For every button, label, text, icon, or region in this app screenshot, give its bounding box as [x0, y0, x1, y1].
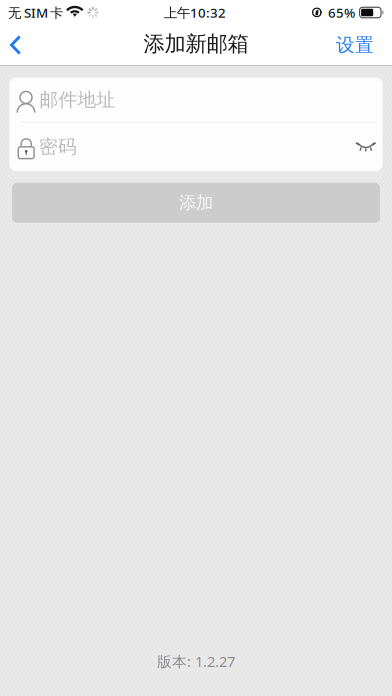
button[interactable]: 设置 [318, 23, 392, 66]
staticText: 65% [328, 4, 355, 21]
staticText: 无 SIM 卡 [8, 4, 63, 21]
staticText: 添加 [179, 192, 213, 213]
button[interactable]: 添加 [12, 183, 380, 223]
button[interactable]: 返回 [0, 25, 39, 65]
staticText: 密码 [39, 135, 77, 158]
staticText: 版本: 1.2.27 [157, 651, 235, 671]
staticText: 上午10:32 [164, 4, 226, 21]
button[interactable]: 显示密码 [345, 129, 382, 165]
staticText: 设置 [336, 33, 374, 56]
staticText: 添加新邮箱 [143, 31, 248, 57]
staticText: 邮件地址 [39, 88, 115, 111]
